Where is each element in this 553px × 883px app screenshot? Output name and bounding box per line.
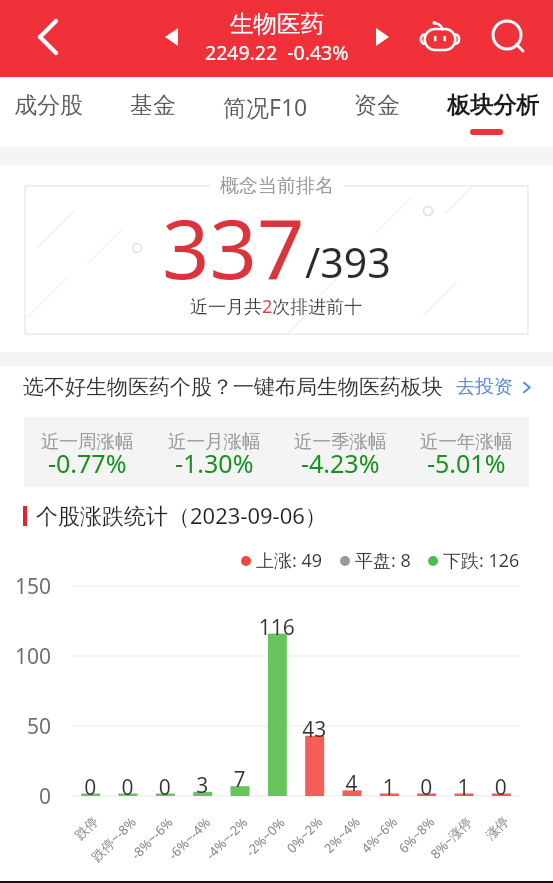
staticText: 基金 (130, 91, 176, 120)
button[interactable]: Search (485, 12, 533, 60)
staticText: 生物医药 (230, 9, 324, 39)
button[interactable]: Back (24, 13, 72, 61)
button[interactable]: AI assistant (417, 14, 463, 60)
button[interactable]: Next sector (364, 19, 400, 55)
button[interactable]: 基金 (122, 77, 184, 106)
staticText: 近一月涨幅 (168, 430, 261, 453)
staticText: 板块分析 (447, 91, 539, 120)
staticText: 选不好生物医药个股？一键布局生物医药板块 (23, 374, 443, 400)
button[interactable]: 选不好生物医药个股？一键布局生物医药板块 (0, 367, 553, 411)
staticText: 2249.22 -0.43% (205, 39, 349, 66)
staticText: 平盘: 8 (355, 548, 411, 573)
staticText: 去投资 (456, 375, 513, 399)
staticText: -4.23% (301, 446, 380, 480)
staticText: 337 (162, 190, 305, 303)
button[interactable]: 板块分析 (439, 77, 547, 106)
staticText: 近一季涨幅 (294, 430, 387, 453)
staticText: /393 (305, 234, 391, 290)
staticText: -1.30% (175, 446, 254, 480)
staticText: -0.77% (48, 446, 127, 480)
staticText: 资金 (354, 91, 400, 120)
button[interactable]: 简况F10 (215, 77, 316, 108)
staticText: 近一月共2次排进前十 (190, 294, 363, 319)
staticText: 近一周涨幅 (41, 430, 134, 453)
button[interactable]: 成分股 (6, 77, 91, 106)
staticText: 上涨: 49 (256, 548, 323, 573)
staticText: 近一年涨幅 (420, 430, 513, 453)
button[interactable]: 资金 (346, 77, 408, 106)
staticText: 个股涨跌统计（2023-09-06） (36, 500, 327, 530)
staticText: 简况F10 (223, 91, 308, 122)
staticText: 下跌: 126 (443, 548, 520, 573)
button[interactable]: Previous sector (153, 19, 189, 55)
staticText: 成分股 (14, 91, 83, 120)
staticText: -5.01% (427, 446, 506, 480)
staticText: 概念当前排名 (220, 174, 334, 198)
